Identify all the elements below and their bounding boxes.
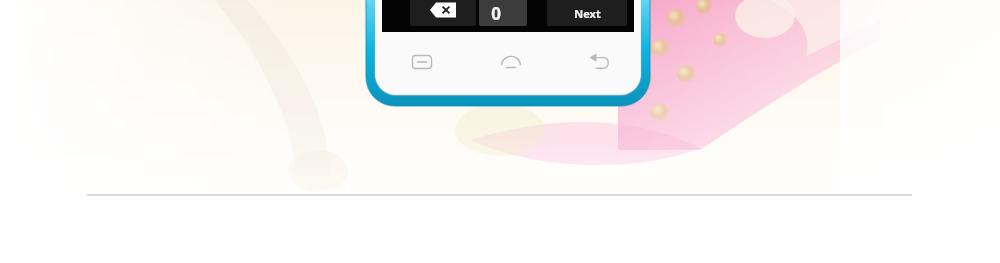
button[interactable]: Back [576, 46, 624, 78]
button[interactable]: Next [547, 0, 627, 26]
button[interactable]: Backspace [410, 0, 476, 26]
button[interactable]: Home [487, 46, 535, 78]
button[interactable]: Recent apps [398, 46, 446, 78]
staticText: Next [574, 6, 601, 21]
button[interactable]: 0 [479, 0, 527, 26]
staticText: 0 [491, 2, 501, 25]
